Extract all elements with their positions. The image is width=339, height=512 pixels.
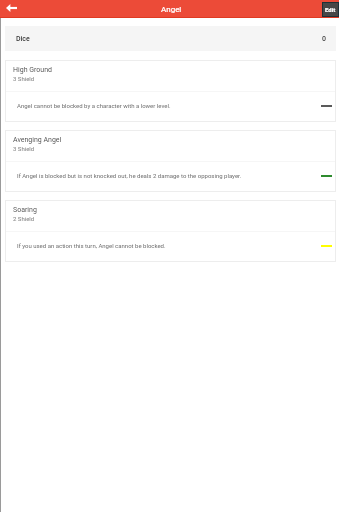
button[interactable]: Dice bbox=[5, 26, 336, 51]
button[interactable]: Avenging Angel bbox=[5, 130, 336, 192]
staticText: 3 Shield bbox=[13, 75, 35, 82]
button[interactable]: Back bbox=[6, 4, 17, 12]
staticText: Edit bbox=[325, 6, 336, 13]
staticText: High Ground bbox=[13, 66, 52, 74]
staticText: Angel cannot be blocked by a character w… bbox=[17, 102, 171, 109]
button[interactable]: High Ground bbox=[5, 60, 336, 122]
staticText: Soaring bbox=[13, 206, 37, 214]
staticText: Avenging Angel bbox=[13, 136, 62, 144]
staticText: 0 bbox=[322, 35, 326, 43]
staticText: If you used an action this turn, Angel c… bbox=[17, 242, 166, 249]
staticText: Dice bbox=[16, 35, 30, 43]
staticText: 2 Shield bbox=[13, 215, 35, 222]
staticText: Angel bbox=[161, 5, 182, 14]
staticText: 3 Shield bbox=[13, 145, 35, 152]
button[interactable]: Edit bbox=[323, 3, 338, 16]
button[interactable]: Soaring bbox=[5, 200, 336, 262]
staticText: If Angel is blocked but is not knocked o… bbox=[17, 172, 242, 179]
